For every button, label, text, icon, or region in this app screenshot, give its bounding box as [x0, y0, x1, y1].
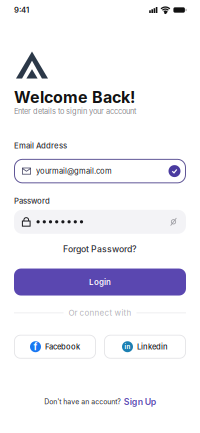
button[interactable]: f: [14, 335, 96, 359]
button[interactable]: Show password: [169, 218, 178, 226]
staticText: 9:41: [14, 5, 29, 15]
staticText: Don't have an account?: [44, 397, 121, 406]
staticText: Email Address: [14, 141, 67, 150]
button[interactable]: Login: [14, 268, 186, 295]
staticText: yourmail@gmail.com: [36, 166, 112, 176]
staticText: Password: [14, 196, 50, 206]
staticText: f: [33, 341, 37, 352]
staticText: Facebook: [45, 342, 80, 351]
staticText: Welcome Back!: [14, 87, 135, 107]
staticText: Sign Up: [124, 396, 156, 407]
staticText: Enter details to signin your acccount: [14, 107, 136, 116]
staticText: Login: [89, 277, 111, 287]
button[interactable]: in: [104, 335, 186, 359]
staticText: Or connect with: [68, 308, 131, 318]
staticText: Linkedin: [137, 342, 168, 351]
button[interactable]: Forgot Password?: [63, 244, 137, 254]
staticText: in: [124, 343, 130, 350]
staticText: Forgot Password?: [63, 244, 137, 254]
button[interactable]: Sign Up: [124, 396, 156, 407]
